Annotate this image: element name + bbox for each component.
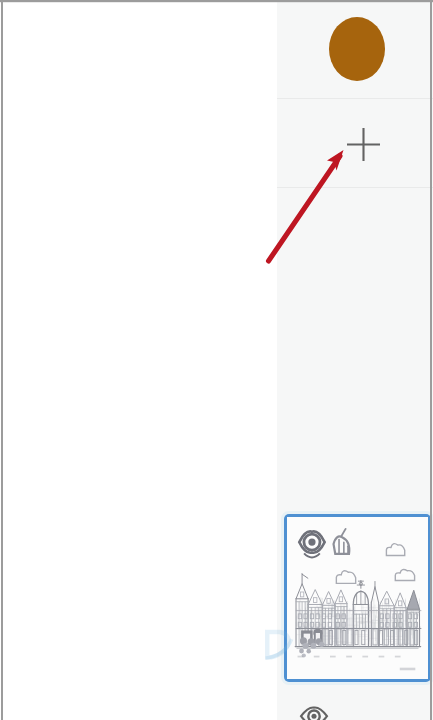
button[interactable]: Add layer [341,122,385,166]
button[interactable]: Toggle layer visibility [291,696,337,720]
button[interactable]: Layer thumbnail [287,517,428,679]
button[interactable]: Current color [322,10,392,88]
